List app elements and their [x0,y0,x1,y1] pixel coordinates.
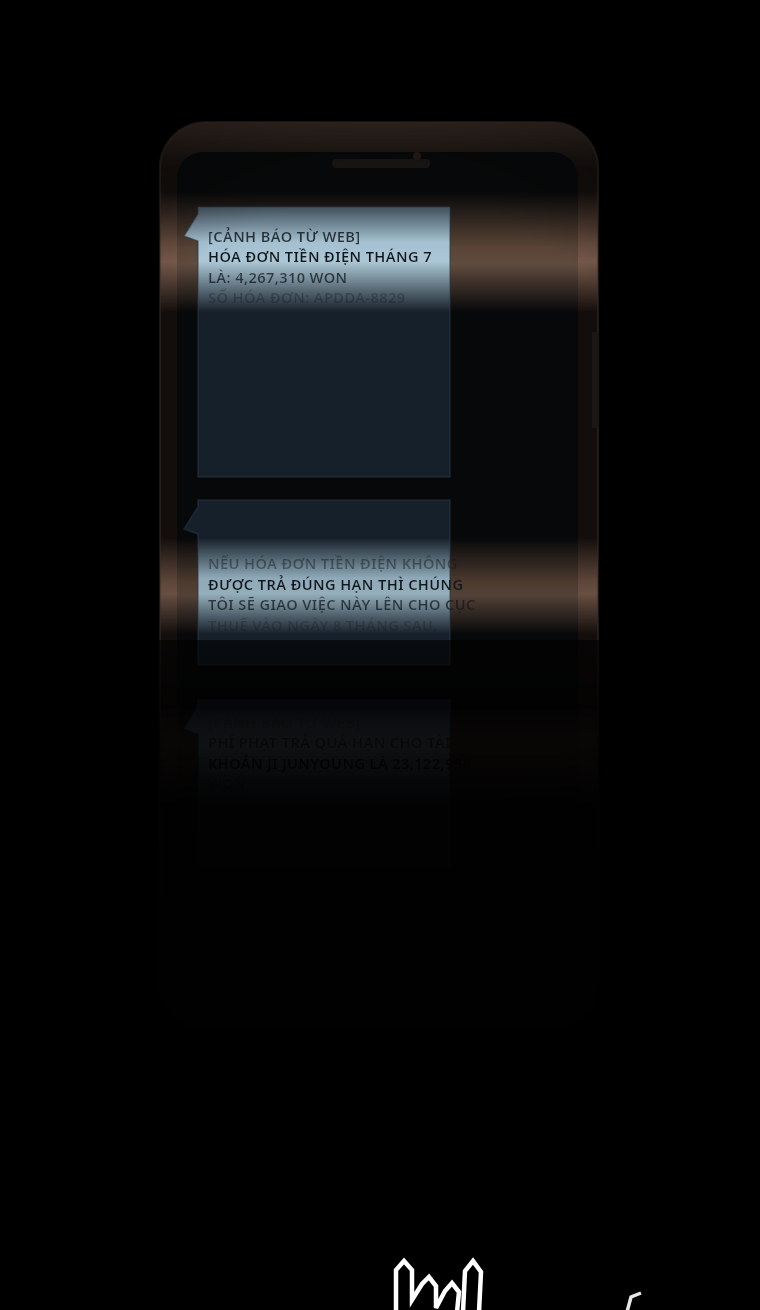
button[interactable]: Phone showing billing warning messages [0,0,760,1310]
